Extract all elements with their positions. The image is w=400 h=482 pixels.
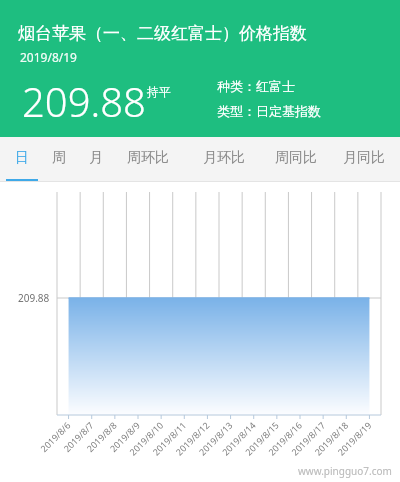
staticText: 209.88 (22, 74, 146, 128)
button[interactable]: 月同比 (335, 137, 393, 182)
staticText: 周 (52, 149, 66, 167)
staticText: 日 (15, 149, 29, 167)
button[interactable]: 周同比 (267, 137, 325, 182)
staticText: 烟台苹果（一、二级红富士）价格指数 (18, 23, 307, 44)
staticText: 持平 (147, 84, 171, 99)
staticText: 周同比 (275, 149, 317, 167)
staticText: 种类：红富士 (217, 78, 295, 94)
staticText: 周环比 (127, 149, 169, 167)
staticText: 类型：日定基指数 (217, 103, 321, 119)
staticText: 月同比 (343, 149, 385, 167)
button[interactable]: 周环比 (119, 137, 177, 182)
button[interactable]: 周 (43, 137, 75, 182)
staticText: 月 (89, 149, 103, 167)
button[interactable]: 月环比 (195, 137, 253, 182)
staticText: 2019/8/19 (20, 49, 77, 65)
button[interactable]: 日 (6, 137, 38, 182)
button[interactable]: 月 (80, 137, 112, 182)
staticText: 月环比 (203, 149, 245, 167)
